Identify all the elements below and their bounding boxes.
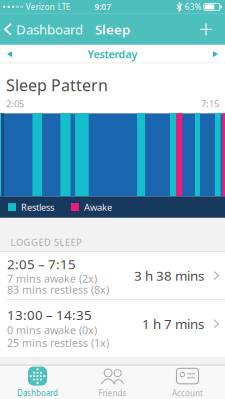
button[interactable]: Account bbox=[150, 365, 225, 399]
staticText: 2:05 bbox=[6, 97, 24, 110]
staticText: Yesterday bbox=[87, 47, 137, 61]
button[interactable]: Friends bbox=[75, 365, 150, 399]
staticText: LTE bbox=[58, 1, 70, 12]
staticText: 25 mins restless (1x) bbox=[7, 336, 109, 350]
staticText: Sleep Pattern bbox=[6, 74, 108, 96]
staticText: 63% bbox=[185, 1, 202, 12]
staticText: 83 mins restless (8x) bbox=[7, 283, 109, 297]
staticText: 0 mins awake (0x) bbox=[7, 323, 97, 337]
staticText: Dashboard bbox=[16, 20, 83, 38]
button[interactable]: Dashboard bbox=[0, 20, 83, 38]
staticText: 3 h 38 mins bbox=[134, 267, 204, 284]
staticText: 1 h 7 mins bbox=[142, 315, 204, 333]
button[interactable] bbox=[200, 23, 225, 35]
button[interactable] bbox=[213, 51, 225, 57]
button[interactable]: 13:00 – 14:35 bbox=[0, 300, 225, 358]
staticText: Sleep bbox=[95, 20, 130, 38]
staticText: Dashboard bbox=[17, 388, 58, 398]
button[interactable]: 2:05 – 7:15 bbox=[0, 252, 225, 299]
staticText: Friends bbox=[98, 388, 126, 398]
staticText: LOGGED SLEEP bbox=[10, 236, 82, 248]
button[interactable]: Dashboard bbox=[0, 365, 75, 399]
staticText: Awake bbox=[84, 201, 112, 213]
staticText: 13:00 – 14:35 bbox=[7, 306, 92, 324]
staticText: 7 mins awake (2x) bbox=[7, 271, 97, 286]
staticText: Verizon bbox=[26, 1, 55, 12]
staticText: 2:05 – 7:15 bbox=[7, 255, 76, 273]
staticText: Restless bbox=[21, 201, 54, 213]
button[interactable] bbox=[0, 51, 12, 57]
staticText: 7:15 bbox=[201, 97, 219, 110]
staticText: Account bbox=[172, 388, 203, 398]
staticText: 9:07 bbox=[94, 1, 111, 12]
